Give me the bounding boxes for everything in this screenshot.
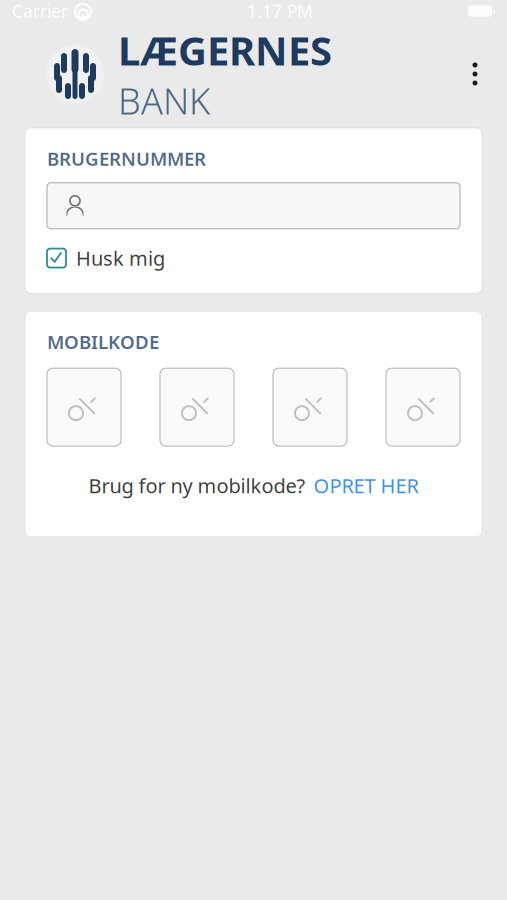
button[interactable]: Mobile code digit 3 — [273, 368, 347, 446]
button[interactable]: Mobile code digit 1 — [47, 368, 121, 446]
staticText: Brug for ny mobilkode? — [88, 472, 305, 499]
staticText: 1.17 PM — [247, 0, 313, 22]
staticText: Husk mig — [76, 245, 165, 271]
staticText: Carrier — [12, 0, 68, 22]
staticText: BRUGERNUMMER — [47, 146, 206, 171]
button[interactable]: Mobile code digit 4 — [386, 368, 460, 446]
staticText: MOBILKODE — [47, 329, 159, 354]
staticText: OPRET HER — [313, 472, 418, 499]
button[interactable]: Mobile code digit 2 — [160, 368, 234, 446]
button[interactable]: OPRET HER — [305, 468, 418, 503]
staticText: LÆGERNES — [118, 23, 332, 77]
button[interactable]: Brugernummer input field — [47, 183, 460, 229]
button[interactable]: Husk mig — [25, 237, 482, 279]
button[interactable]: More options — [453, 52, 497, 96]
staticText: BANK — [118, 77, 210, 124]
